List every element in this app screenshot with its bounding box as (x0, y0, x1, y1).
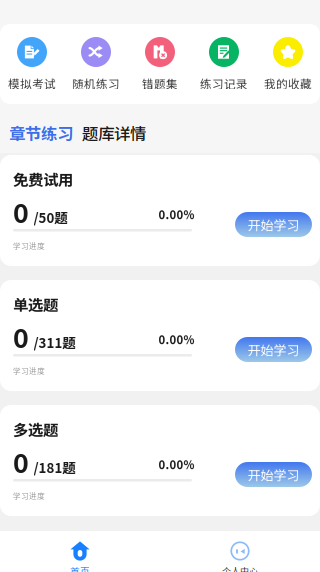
staticText: 学习进度 (13, 365, 45, 376)
staticText: 0 (13, 192, 29, 231)
staticText: 0 (13, 442, 29, 481)
staticText: 多选题 (13, 418, 58, 440)
staticText: 错题集 (142, 75, 178, 92)
button[interactable]: 个人中心 (160, 531, 320, 572)
staticText: 个人中心 (222, 564, 258, 572)
staticText: 0.00% (158, 456, 194, 472)
staticText: 我的收藏 (264, 75, 312, 92)
staticText: /50题 (33, 208, 67, 227)
button[interactable]: 开始学习 (235, 337, 312, 362)
staticText: 首页 (70, 564, 90, 572)
staticText: 单选题 (13, 293, 58, 315)
staticText: 0.00% (158, 206, 194, 222)
staticText: 0.00% (158, 331, 194, 347)
staticText: 免费试用 (13, 168, 73, 190)
staticText: 模拟考试 (8, 75, 56, 92)
button[interactable]: 章节练习 (9, 121, 73, 145)
button[interactable]: 练习记录 (192, 36, 256, 92)
staticText: /311题 (33, 333, 75, 352)
staticText: 学习进度 (13, 490, 45, 501)
button[interactable]: 题库详情 (82, 121, 146, 145)
staticText: 开始学习 (247, 465, 299, 484)
button[interactable]: 开始学习 (235, 212, 312, 237)
staticText: 题库详情 (82, 121, 146, 145)
staticText: 开始学习 (247, 215, 299, 234)
staticText: 开始学习 (247, 340, 299, 359)
button[interactable]: 开始学习 (235, 462, 312, 487)
button[interactable]: 我的收藏 (256, 36, 320, 92)
staticText: 章节练习 (9, 121, 73, 145)
staticText: 随机练习 (72, 75, 120, 92)
staticText: 0 (13, 317, 29, 356)
staticText: 练习记录 (200, 75, 248, 92)
button[interactable]: 错题集 (128, 36, 192, 92)
button[interactable]: 模拟考试 (0, 36, 64, 92)
staticText: /181题 (33, 458, 75, 477)
button[interactable]: 首页 (0, 531, 160, 572)
button[interactable]: 随机练习 (64, 36, 128, 92)
staticText: 学习进度 (13, 240, 45, 251)
